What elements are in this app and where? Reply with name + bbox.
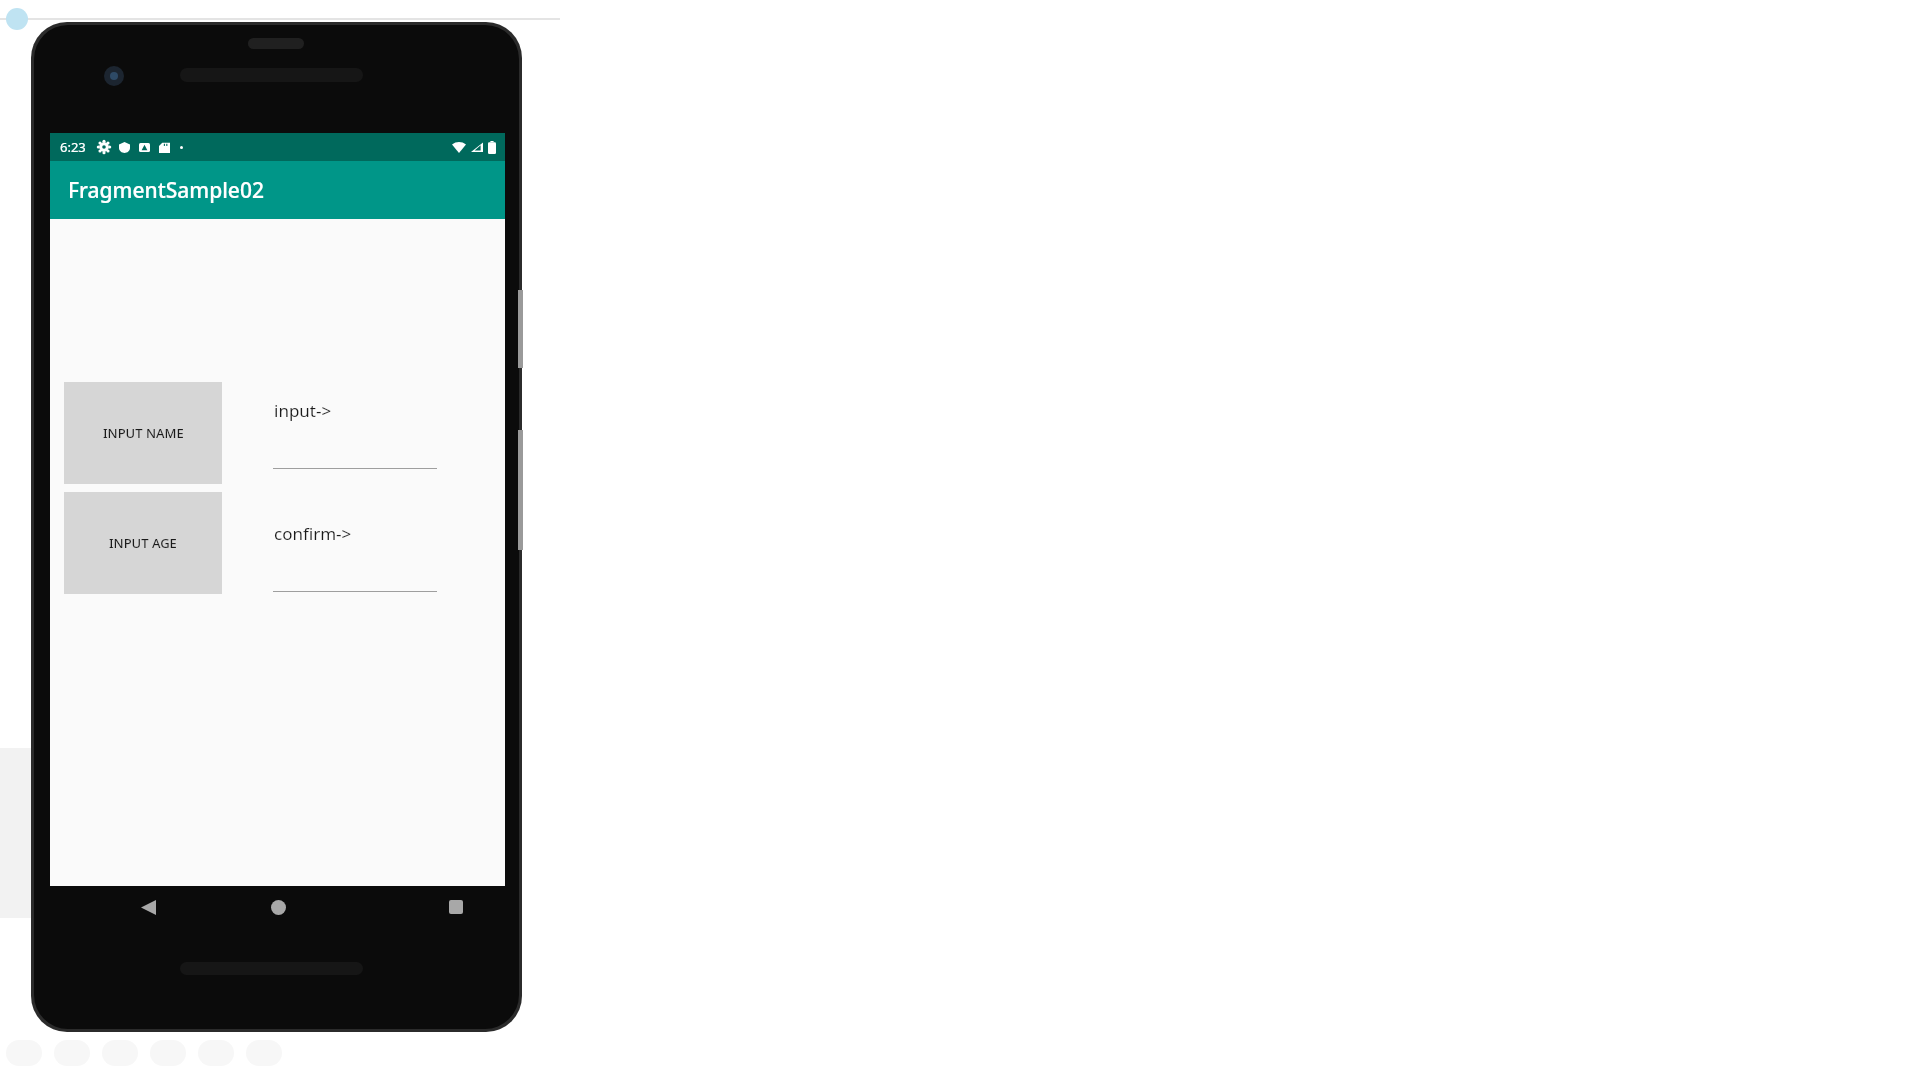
- button[interactable]: confirm->: [273, 522, 437, 592]
- staticText: confirm->: [274, 522, 352, 545]
- button[interactable]: Home: [258, 887, 298, 927]
- button[interactable]: INPUT NAME: [64, 382, 222, 484]
- staticText: INPUT AGE: [109, 534, 177, 552]
- button[interactable]: input->: [273, 399, 437, 469]
- button[interactable]: Recent apps: [436, 887, 476, 927]
- button[interactable]: INPUT AGE: [64, 492, 222, 594]
- staticText: INPUT NAME: [103, 424, 184, 442]
- staticText: input->: [274, 399, 332, 422]
- staticText: FragmentSample02: [68, 176, 264, 205]
- staticText: 6:23: [60, 138, 86, 156]
- button[interactable]: Back: [128, 887, 168, 927]
